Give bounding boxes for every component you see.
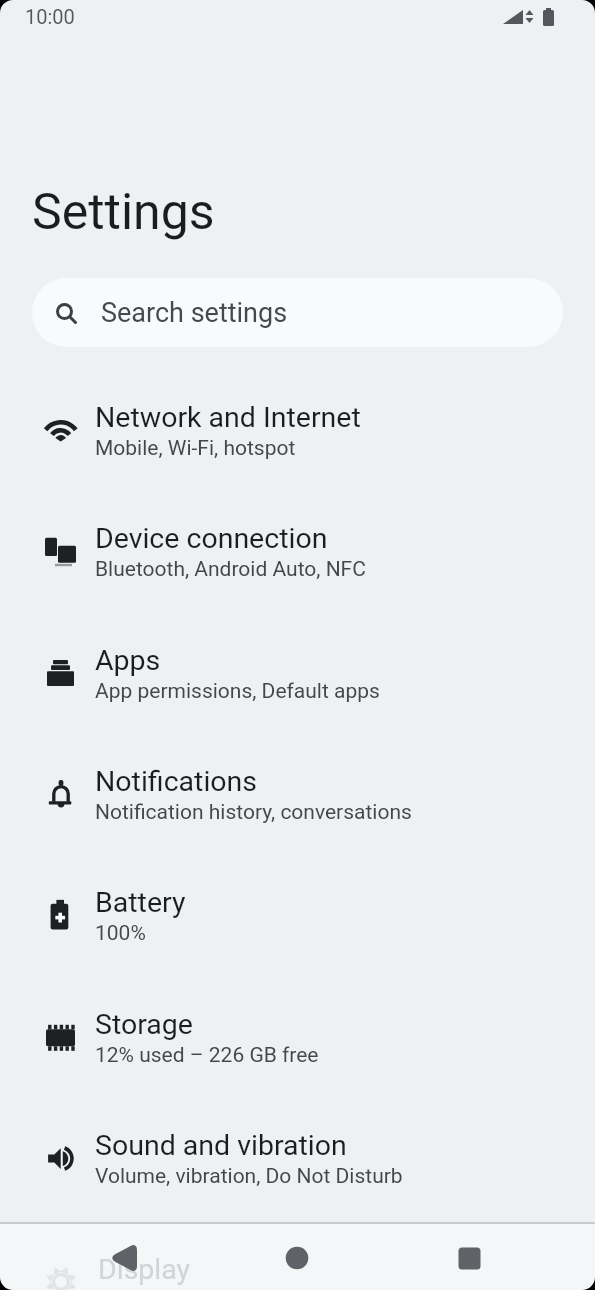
button[interactable]: Sound and vibration — [0, 1098, 595, 1219]
button[interactable] — [273, 1234, 321, 1282]
staticText: Notifications — [95, 765, 258, 798]
staticText: Settings — [32, 183, 215, 242]
button[interactable]: Storage — [0, 977, 595, 1098]
staticText: Volume, vibration, Do Not Disturb — [95, 1164, 403, 1189]
staticText: Display — [98, 1253, 191, 1286]
staticText: Sound and vibration — [95, 1129, 347, 1162]
staticText: Device connection — [95, 522, 328, 555]
button[interactable]: Search settings — [32, 278, 563, 347]
button[interactable]: Battery — [0, 855, 595, 976]
button[interactable]: Network and Internet — [0, 370, 595, 491]
button[interactable]: Apps — [0, 613, 595, 734]
staticText: 12% used – 226 GB free — [95, 1043, 319, 1068]
staticText: Notification history, conversations — [95, 800, 412, 825]
staticText: App permissions, Default apps — [95, 679, 380, 704]
staticText: Battery — [95, 886, 186, 919]
staticText: 10:00 — [25, 5, 75, 28]
button[interactable]: Notifications — [0, 734, 595, 855]
button[interactable]: Device connection — [0, 491, 595, 612]
staticText: 100% — [95, 921, 146, 946]
staticText: Mobile, Wi-Fi, hotspot — [95, 436, 296, 461]
staticText: Storage — [95, 1008, 193, 1041]
staticText: Bluetooth, Android Auto, NFC — [95, 557, 366, 582]
staticText: Apps — [95, 644, 161, 677]
staticText: Search settings — [101, 297, 288, 329]
button[interactable] — [445, 1234, 493, 1282]
button[interactable] — [100, 1234, 148, 1282]
staticText: Network and Internet — [95, 401, 361, 434]
